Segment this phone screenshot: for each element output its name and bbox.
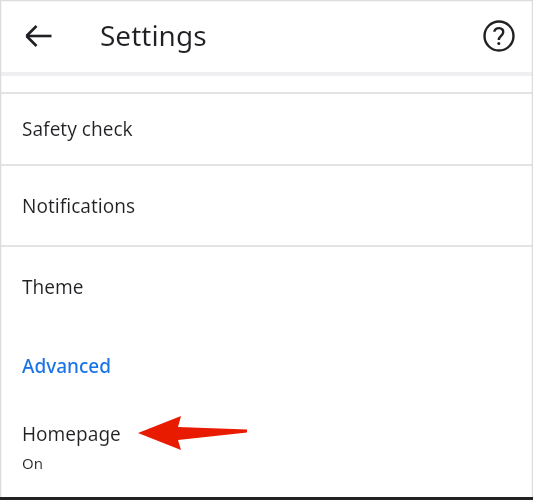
button[interactable]: Advanced [0, 326, 533, 405]
button[interactable]: Theme [0, 247, 533, 326]
staticText: Advanced [22, 353, 112, 379]
staticText: Safety check [22, 116, 133, 142]
button[interactable]: Safety check [0, 94, 533, 164]
staticText: Theme [22, 274, 84, 300]
button[interactable]: Back [15, 12, 63, 60]
staticText: On [22, 453, 43, 473]
button[interactable]: Notifications [0, 166, 533, 245]
staticText: Settings [100, 16, 207, 54]
button[interactable]: Help [475, 12, 523, 60]
staticText: Homepage [22, 421, 121, 447]
button[interactable]: Homepage [0, 405, 533, 489]
staticText: Notifications [22, 193, 136, 219]
